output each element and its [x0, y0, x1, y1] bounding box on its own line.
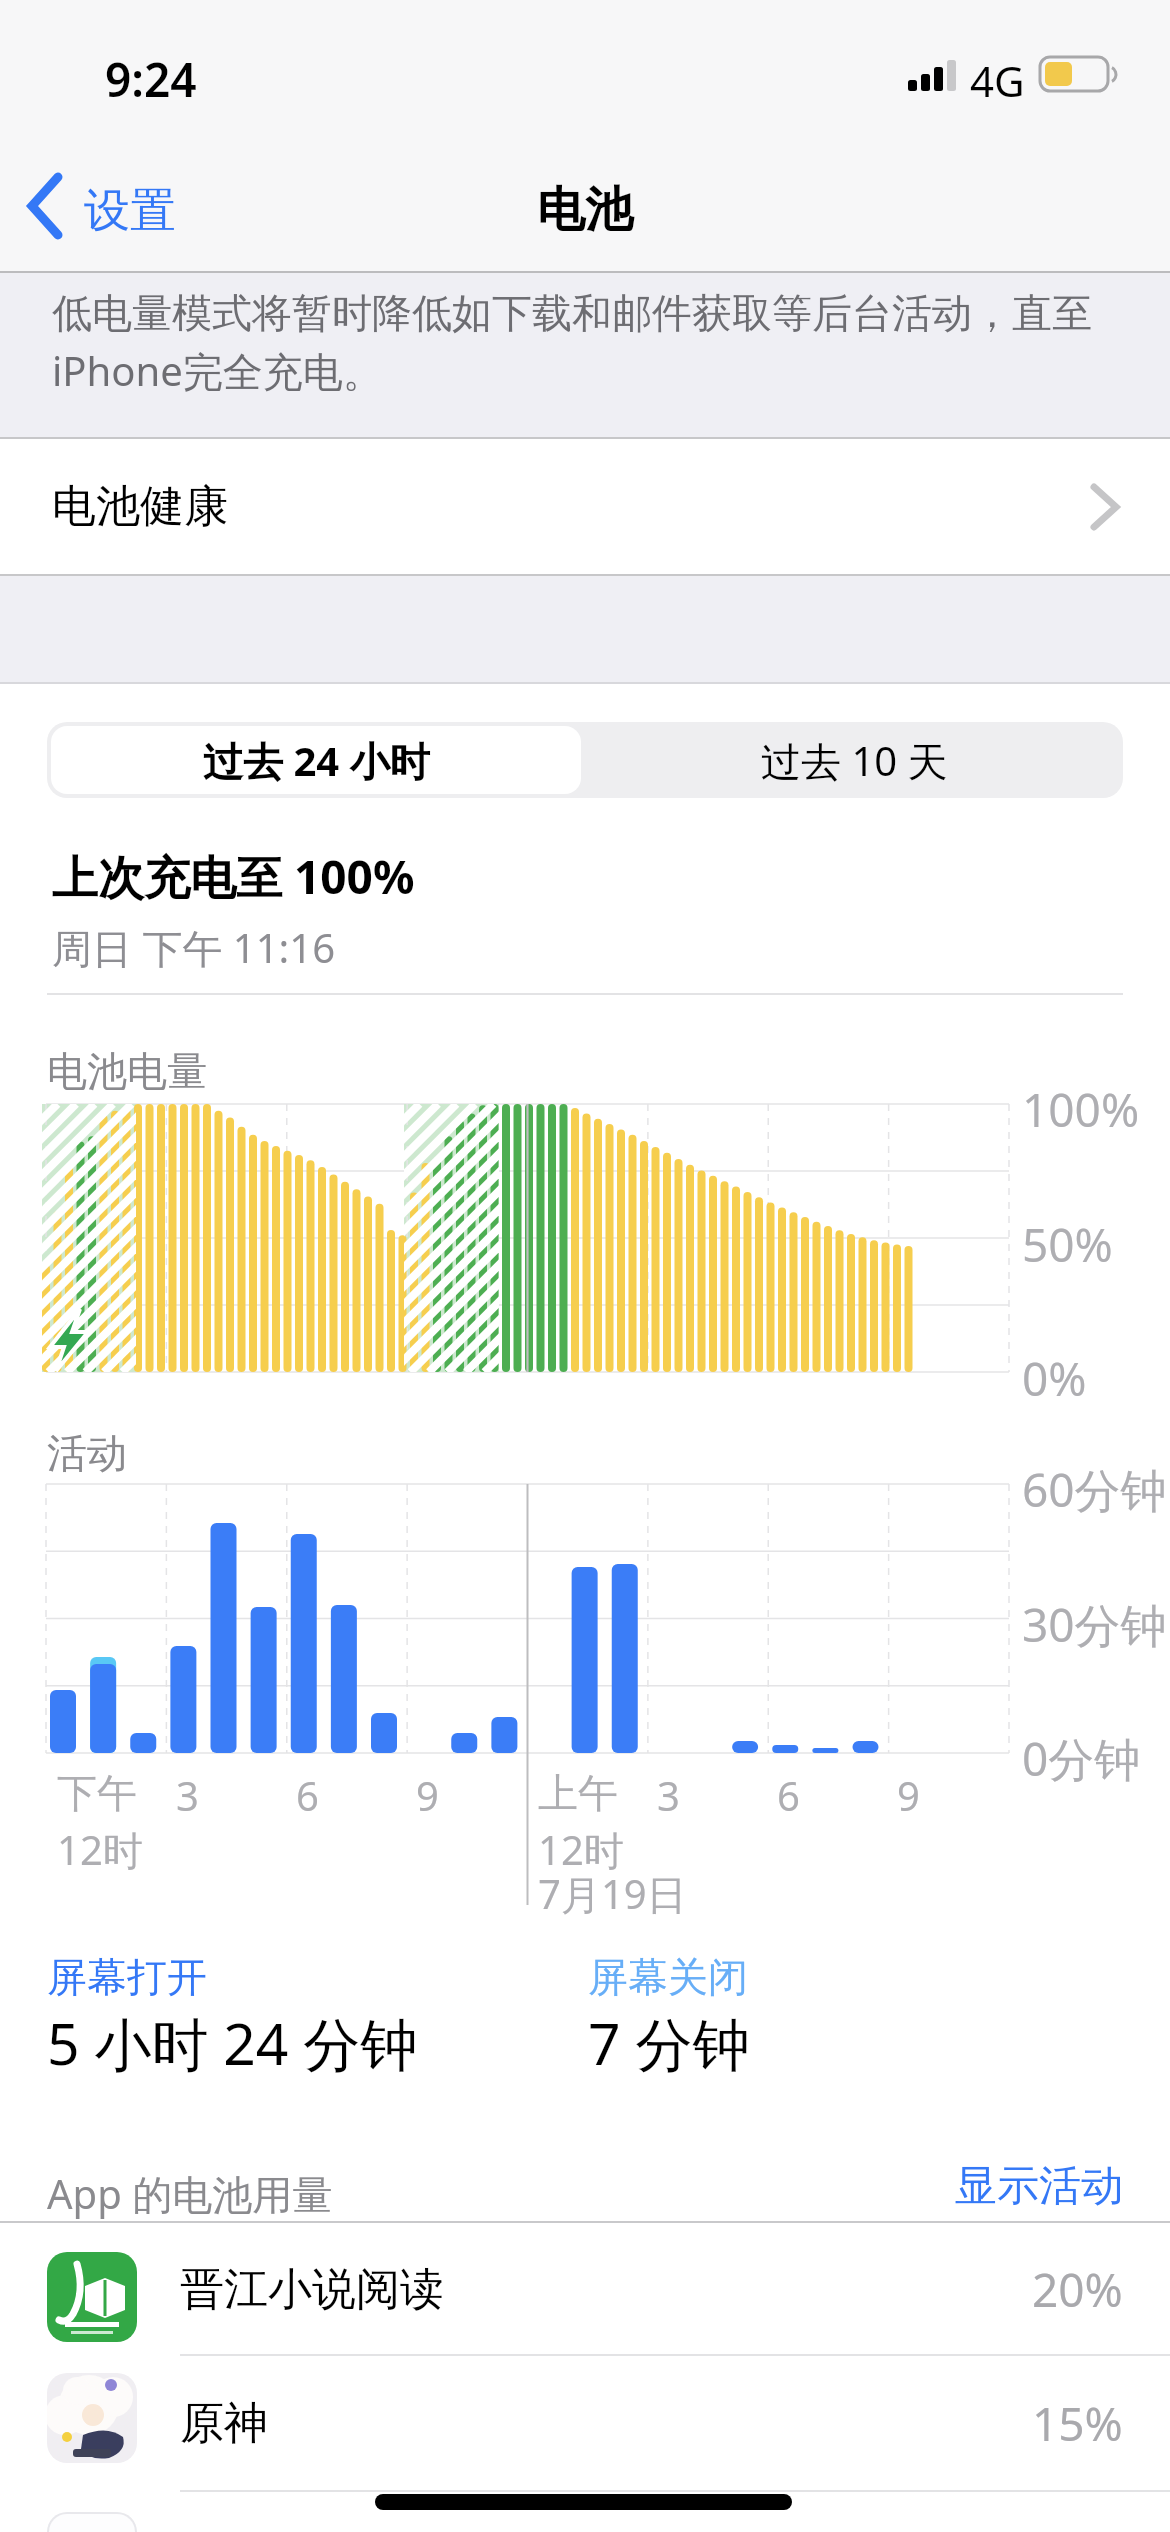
staticText: 9 [897, 1768, 920, 1822]
button[interactable]: 原神 [0, 2356, 1170, 2491]
staticText: 4G [970, 52, 1025, 109]
staticText: 过去 10 天 [761, 733, 948, 788]
button[interactable]: 过去 24 小时 [51, 726, 581, 794]
staticText: 上次充电至 100% [52, 845, 415, 908]
staticText: 3 [176, 1768, 199, 1822]
staticText: 原神 [180, 2396, 268, 2451]
staticText: 上午 12时 [538, 1768, 624, 1877]
staticText: App 的电池用量 [47, 2166, 333, 2221]
staticText: 9:24 [105, 48, 197, 111]
staticText: 晋江小说阅读 [180, 2262, 444, 2317]
staticText: 过去 24 小时 [203, 733, 430, 788]
staticText: 电池电量 [47, 1046, 207, 1096]
staticText: 0分钟 [1022, 1727, 1141, 1790]
staticText: 50% [1022, 1213, 1113, 1276]
staticText: 15% [1032, 2392, 1123, 2455]
button[interactable]: 显示活动 [823, 2160, 1123, 2212]
button[interactable]: 电池健康 [0, 439, 1170, 574]
staticText: 6 [777, 1768, 800, 1822]
staticText: 60分钟 [1022, 1458, 1167, 1521]
button[interactable]: 过去 10 天 [585, 722, 1123, 798]
staticText: 设置 [84, 182, 176, 240]
staticText: 7月19日 [538, 1866, 687, 1921]
staticText: 屏幕打开 [47, 1952, 207, 2002]
staticText: 屏幕关闭 [588, 1952, 748, 2002]
button[interactable]: 晋江小说阅读 [0, 2224, 1170, 2355]
staticText: 低电量模式将暂时降低如下载和邮件获取等后台活动，直至 iPhone完全充电。 [52, 288, 1092, 398]
staticText: 电池 [537, 180, 633, 240]
staticText: 6 [296, 1768, 319, 1822]
staticText: 7 分钟 [588, 2004, 750, 2082]
button[interactable] [20, 165, 220, 245]
staticText: 显示活动 [955, 2160, 1123, 2212]
staticText: 30分钟 [1022, 1593, 1167, 1656]
staticText: 100% [1022, 1078, 1140, 1141]
staticText: 9 [416, 1768, 439, 1822]
staticText: 0% [1022, 1347, 1087, 1410]
staticText: 电池健康 [52, 479, 228, 534]
staticText: 下午 12时 [57, 1768, 143, 1877]
staticText: 3 [657, 1768, 680, 1822]
staticText: 5 小时 24 分钟 [47, 2004, 418, 2082]
staticText: 20% [1032, 2258, 1123, 2321]
staticText: 周日 下午 11:16 [52, 920, 336, 975]
staticText: 活动 [47, 1428, 127, 1478]
